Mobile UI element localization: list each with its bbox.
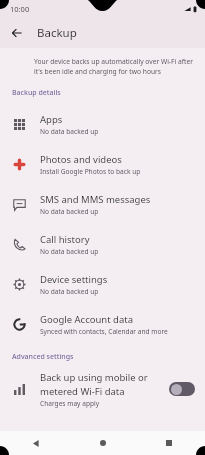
staticText: Your device backs up automatically over … <box>34 57 193 76</box>
staticText: Google Account data <box>40 313 134 326</box>
staticText: 10:00 <box>10 4 30 14</box>
button[interactable]: Device settings <box>0 264 205 304</box>
button[interactable]: Back up using mobile or metered Wi-Fi da… <box>169 382 195 396</box>
staticText: Photos and videos <box>40 153 122 166</box>
staticText: Backup details <box>12 88 61 98</box>
staticText: Apps <box>40 113 63 126</box>
button[interactable]: Google Account data <box>0 304 205 344</box>
staticText: Synced with contacts, Calendar and more <box>40 327 168 336</box>
staticText: No data backed up <box>40 287 99 296</box>
button[interactable]: Apps <box>0 104 205 144</box>
staticText: Charges may apply <box>40 399 100 408</box>
button[interactable]: Back <box>26 433 46 453</box>
staticText: Backup <box>37 25 77 41</box>
staticText: No data backed up <box>40 207 99 216</box>
staticText: No data backed up <box>40 127 99 136</box>
button[interactable]: SMS and MMS messages <box>0 184 205 224</box>
button[interactable]: Recents <box>159 433 179 453</box>
button[interactable]: Photos and videos <box>0 144 205 184</box>
staticText: No data backed up <box>40 247 99 256</box>
button[interactable]: Back up using mobile or metered Wi-Fi da… <box>0 366 205 412</box>
staticText: Install Google Photos to back up <box>40 167 141 176</box>
staticText: Device settings <box>40 273 108 286</box>
staticText: SMS and MMS messages <box>40 193 151 206</box>
button[interactable]: Home <box>93 433 113 453</box>
staticText: Back up using mobile or metered Wi-Fi da… <box>40 371 148 397</box>
staticText: Call history <box>40 233 90 246</box>
button[interactable]: Back <box>4 20 30 46</box>
staticText: Advanced settings <box>12 352 74 362</box>
button[interactable]: Call history <box>0 224 205 264</box>
